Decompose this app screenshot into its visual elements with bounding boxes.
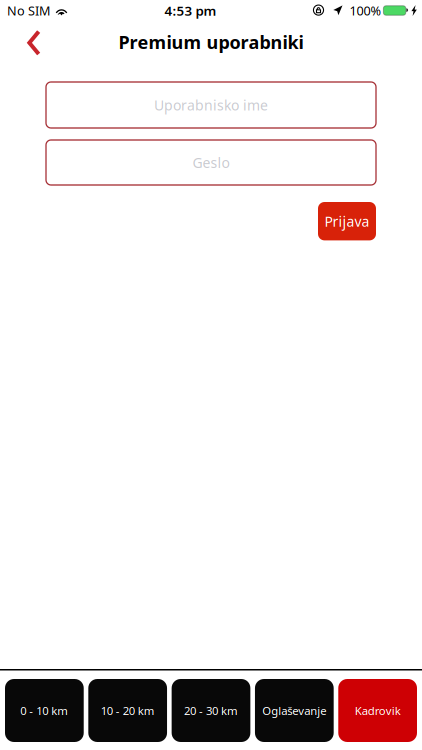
staticText: 20 - 30 km [184,703,238,718]
staticText: Prijava [324,212,369,231]
button[interactable]: 10 - 20 km [88,679,167,742]
staticText: Geslo [192,153,229,172]
button[interactable]: Kadrovik [338,679,417,742]
button[interactable]: Prijava [318,202,376,240]
staticText: 10 - 20 km [101,703,155,718]
staticText: No SIM [7,2,50,19]
staticText: Kadrovik [355,703,401,718]
staticText: 100% [349,2,381,19]
staticText: Premium uporabniki [118,30,303,54]
button[interactable]: Oglaševanje [255,679,334,742]
button[interactable]: 20 - 30 km [172,679,250,742]
staticText: 0 - 10 km [20,703,68,718]
button[interactable]: 0 - 10 km [5,679,84,742]
button[interactable]: Back [13,28,53,56]
staticText: Uporabnisko ime [154,95,268,115]
staticText: Oglaševanje [262,703,326,718]
staticText: 4:53 pm [164,1,216,20]
